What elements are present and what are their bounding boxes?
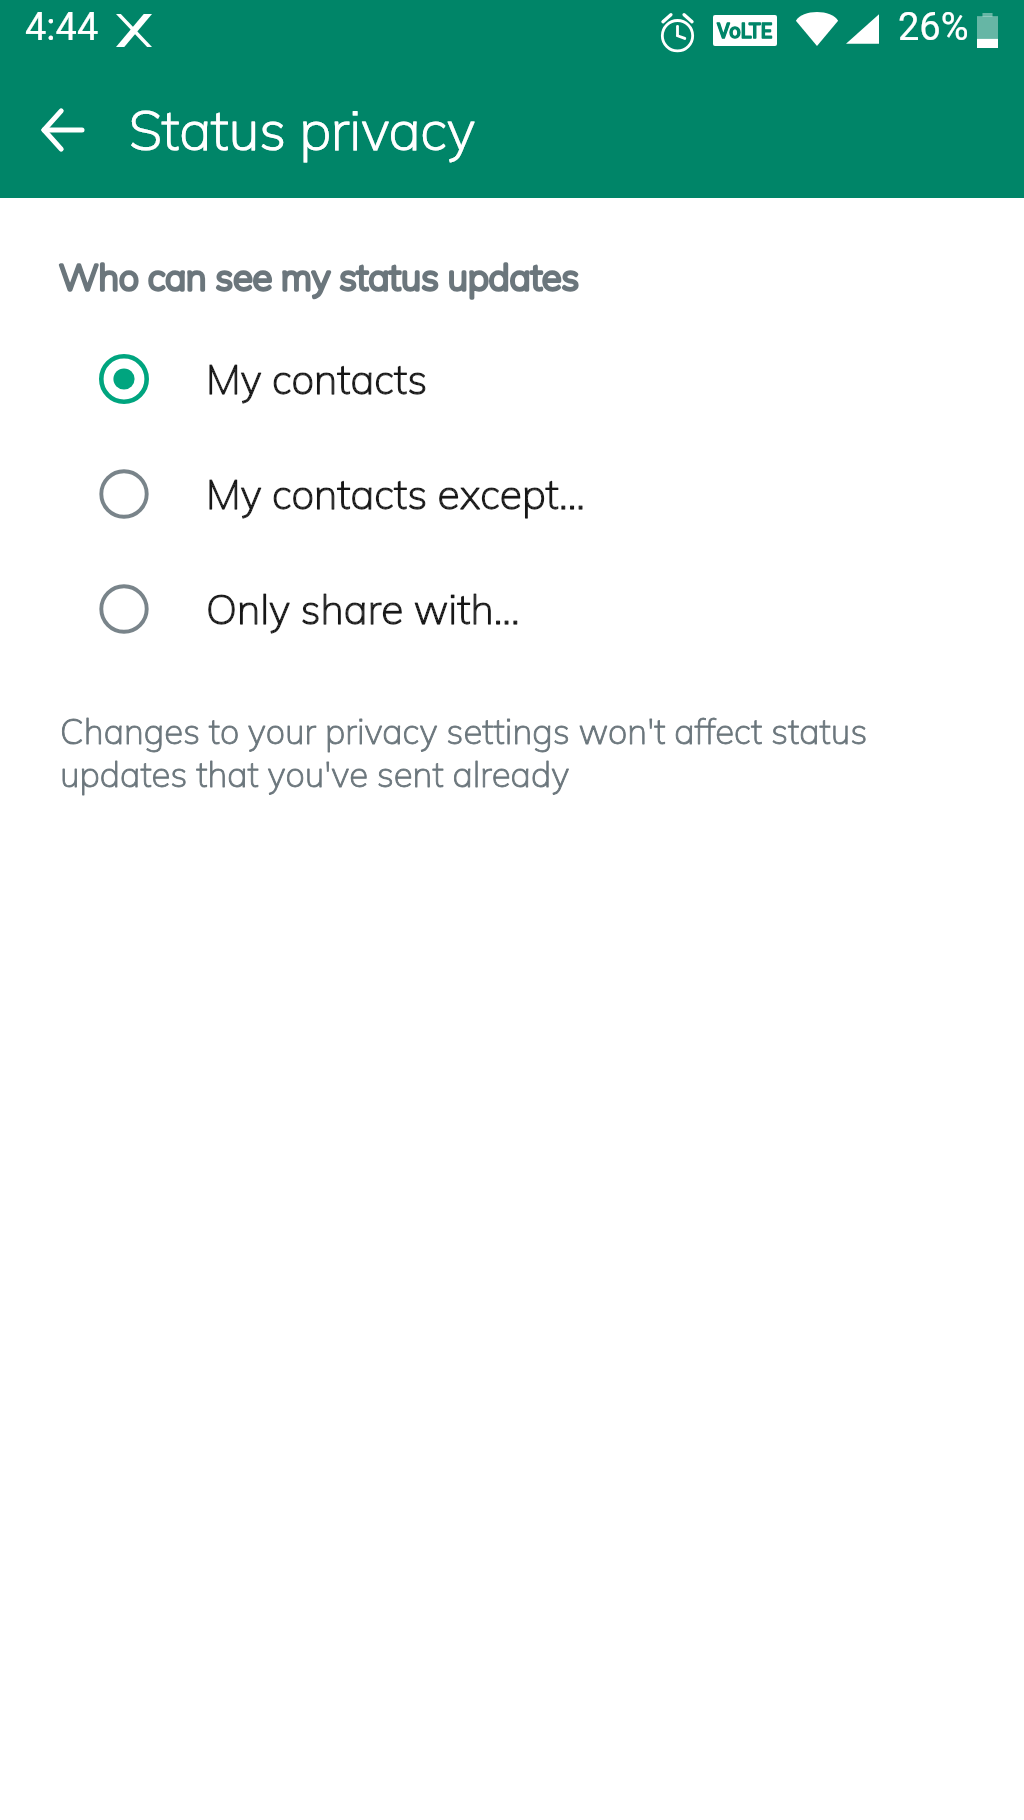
button[interactable]: My contacts [0, 321, 1024, 436]
button[interactable]: Back [20, 88, 104, 172]
staticText: Status privacy [129, 95, 476, 163]
staticText: VoLTE [717, 19, 773, 42]
staticText: Only share with... [206, 583, 520, 634]
staticText: My contacts [206, 353, 428, 404]
button[interactable]: My contacts except... [0, 436, 1024, 551]
staticText: Only share with... [206, 583, 520, 634]
staticText: Who can see my status updates [59, 254, 580, 299]
staticText: 26% [898, 5, 969, 50]
staticText: My contacts [206, 353, 428, 404]
staticText: My contacts except... [206, 468, 585, 519]
staticText: 4:44 [25, 5, 99, 50]
staticText: VoLTE [717, 19, 773, 42]
staticText: Changes to your privacy settings won't a… [60, 709, 868, 796]
button[interactable]: Only share with... [0, 551, 1024, 666]
staticText: Changes to your privacy settings won't a… [60, 709, 868, 796]
staticText: Status privacy [129, 95, 476, 163]
staticText: My contacts except... [206, 468, 585, 519]
staticText: Who can see my status updates [59, 254, 580, 299]
